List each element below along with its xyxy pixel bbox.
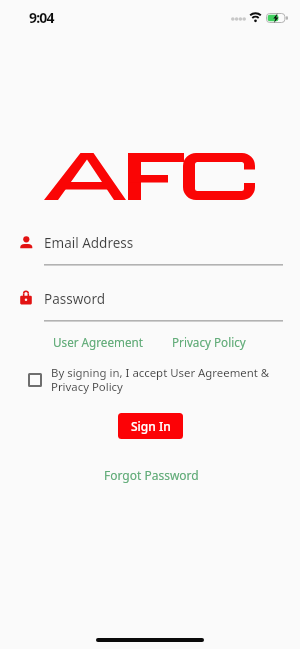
staticText: Email Address bbox=[44, 234, 134, 252]
button[interactable]: By signing in, I accept User Agreement &… bbox=[28, 365, 270, 394]
button[interactable]: Forgot Password bbox=[104, 467, 199, 483]
staticText: Privacy Policy bbox=[172, 334, 246, 350]
staticText: User Agreement bbox=[53, 334, 143, 350]
button[interactable]: User Agreement bbox=[53, 334, 143, 350]
staticText: Password bbox=[44, 290, 106, 308]
staticText: Forgot Password bbox=[104, 467, 199, 483]
button[interactable]: Privacy Policy bbox=[172, 334, 246, 350]
staticText: Sign In bbox=[131, 418, 171, 434]
staticText: 9:04 bbox=[29, 8, 54, 27]
button[interactable]: Sign In bbox=[118, 413, 183, 439]
staticText: By signing in, I accept User Agreement &… bbox=[51, 365, 270, 394]
